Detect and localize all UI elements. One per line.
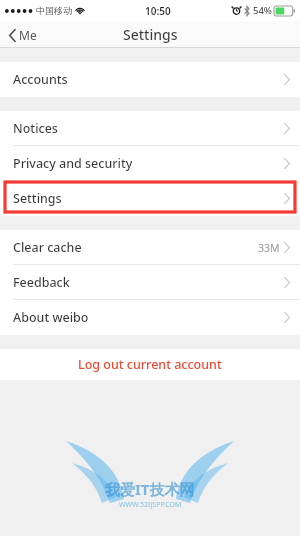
button[interactable]: Notices — [0, 111, 300, 146]
staticText: Feedback — [13, 274, 70, 291]
button[interactable]: About weibo — [0, 300, 300, 335]
staticText: 我爱IT技术网 — [105, 479, 195, 499]
staticText: Notices — [13, 120, 58, 137]
button[interactable]: Clear cache — [0, 230, 300, 265]
button[interactable]: Accounts — [0, 62, 300, 97]
staticText: 中国移动 — [36, 5, 72, 16]
staticText: 54% — [253, 4, 272, 17]
staticText: WWW.52IJSPP.COM — [119, 500, 182, 510]
staticText: Me — [19, 27, 37, 43]
staticText: Log out current account — [78, 356, 222, 373]
button[interactable]: Settings — [0, 181, 300, 216]
staticText: Accounts — [13, 71, 68, 88]
staticText: Privacy and security — [13, 155, 133, 172]
staticText: 10:50 — [145, 4, 171, 18]
staticText: Settings — [13, 190, 62, 207]
staticText: Settings — [123, 25, 178, 44]
staticText: 33M — [258, 241, 280, 255]
button[interactable]: Privacy and security — [0, 146, 300, 181]
staticText: About weibo — [13, 309, 89, 326]
button[interactable]: Back to Me — [7, 24, 39, 46]
staticText: Clear cache — [13, 239, 82, 256]
button[interactable]: Log out current account — [0, 349, 300, 380]
button[interactable]: Feedback — [0, 265, 300, 300]
